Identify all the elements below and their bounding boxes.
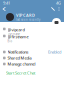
staticText: @vipcard — [8, 27, 25, 32]
staticText: Username — [8, 32, 21, 36]
button[interactable]: More — [56, 6, 62, 12]
staticText: 4G — [56, 0, 61, 6]
staticText: Manage channel — [8, 61, 36, 67]
staticText: @firstname — [8, 34, 29, 39]
staticText: Shared Media — [8, 55, 32, 61]
button[interactable]: Message — [52, 18, 61, 27]
staticText: Notifications — [8, 49, 29, 55]
button[interactable]: @vipcard — [0, 28, 64, 35]
button[interactable]: Call — [50, 6, 56, 12]
button[interactable]: Start Secret Chat — [0, 70, 35, 76]
staticText: last seen recently — [16, 18, 40, 21]
button[interactable]: Back — [1, 6, 8, 12]
staticText: 9:41 — [3, 0, 10, 6]
button[interactable]: Manage channel — [0, 61, 64, 67]
staticText: Start Secret Chat — [6, 70, 35, 76]
button[interactable]: Shared Media — [0, 55, 64, 61]
button[interactable]: Notifications — [0, 49, 64, 55]
staticText: VIP CARD — [16, 13, 35, 18]
staticText: Enabled — [48, 49, 61, 55]
staticText: Bio — [8, 39, 13, 43]
button[interactable]: @firstname — [0, 35, 64, 42]
